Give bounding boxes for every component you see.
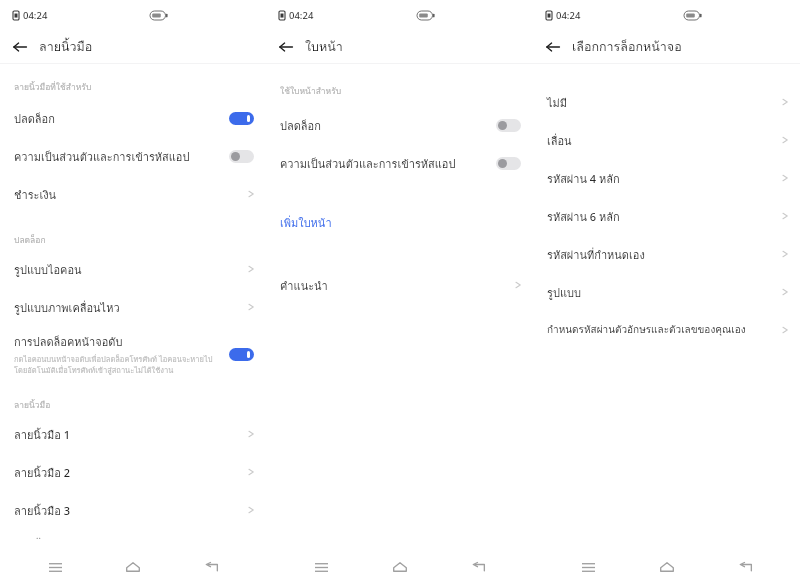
button[interactable]: รูปแบบไอคอน xyxy=(0,250,266,288)
button[interactable]: Off xyxy=(496,119,521,132)
button[interactable]: Off xyxy=(229,150,254,163)
staticText: ลายนิ้วมือ xyxy=(14,398,51,412)
button[interactable]: Back xyxy=(273,34,299,60)
staticText: ลายนิ้วมือ 1 xyxy=(14,426,245,443)
staticText: รหัสผ่าน 6 หลัก xyxy=(547,208,779,225)
button[interactable]: Recent apps xyxy=(298,549,344,585)
button[interactable]: Home xyxy=(110,549,156,585)
staticText: เลื่อน xyxy=(547,132,779,149)
button[interactable]: On xyxy=(229,348,254,361)
button[interactable]: รูปแบบภาพเคลื่อนไหว xyxy=(0,288,266,326)
staticText: รูปแบบภาพเคลื่อนไหว xyxy=(14,299,245,316)
button[interactable]: ลายนิ้วมือ 3 xyxy=(0,491,266,529)
button[interactable]: Home xyxy=(644,549,690,585)
button[interactable]: คำแนะนำ xyxy=(266,266,533,304)
staticText: เลือกการล็อกหน้าจอ xyxy=(572,37,682,57)
button[interactable]: Back xyxy=(455,549,501,585)
button[interactable]: รหัสผ่าน 4 หลัก xyxy=(533,159,800,197)
staticText: ลายนิ้วมือ 3 xyxy=(14,502,245,519)
staticText: ปลดล็อก xyxy=(14,110,223,127)
button[interactable]: ปลดล็อก xyxy=(0,99,266,137)
button[interactable]: Back xyxy=(7,34,33,60)
staticText: ความเป็นส่วนตัวและการเข้ารหัสแอป xyxy=(14,148,223,165)
button[interactable]: เพิ่มใบหน้า xyxy=(266,208,533,236)
button[interactable]: Recent apps xyxy=(565,549,611,585)
staticText: ชำระเงิน xyxy=(14,186,245,203)
button[interactable]: ความเป็นส่วนตัวและการเข้ารหัสแอป xyxy=(266,144,533,182)
button[interactable]: Recent apps xyxy=(32,549,78,585)
button[interactable]: ไม่มี xyxy=(533,83,800,121)
button[interactable]: รหัสผ่านที่กำหนดเอง xyxy=(533,235,800,273)
staticText: ความเป็นส่วนตัวและการเข้ารหัสแอป xyxy=(280,155,490,172)
staticText: คำแนะนำ xyxy=(280,277,512,294)
button[interactable]: Back xyxy=(540,34,566,60)
button[interactable]: On xyxy=(229,112,254,125)
staticText: ลายนิ้วมือที่ใช้สำหรับ xyxy=(14,80,92,94)
staticText: กดไอคอนบนหน้าจอดับเพื่อปลดล็อคโทรศัพท์ ไ… xyxy=(14,353,221,376)
staticText: .. xyxy=(36,529,41,541)
staticText: กำหนดรหัสผ่านตัวอักษรและตัวเลขของคุณเอง xyxy=(547,322,781,338)
button[interactable]: ชำระเงิน xyxy=(0,175,266,213)
button[interactable]: รูปแบบ xyxy=(533,273,800,311)
staticText: ไม่มี xyxy=(547,94,779,111)
staticText: รูปแบบไอคอน xyxy=(14,261,245,278)
button[interactable]: เลื่อน xyxy=(533,121,800,159)
button[interactable]: Back xyxy=(188,549,234,585)
button[interactable]: ปลดล็อก xyxy=(266,106,533,144)
button[interactable]: รหัสผ่าน 6 หลัก xyxy=(533,197,800,235)
staticText: เพิ่มใบหน้า xyxy=(280,214,332,231)
staticText: ใบหน้า xyxy=(305,37,343,57)
staticText: รหัสผ่านที่กำหนดเอง xyxy=(547,246,779,263)
button[interactable]: Off xyxy=(496,157,521,170)
button[interactable]: กำหนดรหัสผ่านตัวอักษรและตัวเลขของคุณเอง xyxy=(533,311,800,349)
button[interactable]: Back xyxy=(722,549,768,585)
staticText: ใช้ใบหน้าสำหรับ xyxy=(280,84,342,98)
staticText: 04:24 xyxy=(556,9,581,22)
staticText: 04:24 xyxy=(289,9,314,22)
staticText: รหัสผ่าน 4 หลัก xyxy=(547,170,779,187)
staticText: การปลดล็อคหน้าจอดับ xyxy=(14,333,123,350)
staticText: 04:24 xyxy=(23,9,48,22)
button[interactable]: Home xyxy=(377,549,423,585)
staticText: รูปแบบ xyxy=(547,284,779,301)
button[interactable]: ความเป็นส่วนตัวและการเข้ารหัสแอป xyxy=(0,137,266,175)
button[interactable]: ลายนิ้วมือ 2 xyxy=(0,453,266,491)
button[interactable]: การปลดล็อคหน้าจอดับ xyxy=(0,326,266,376)
staticText: ปลดล็อก xyxy=(14,233,46,247)
staticText: ลายนิ้วมือ xyxy=(39,37,93,57)
button[interactable]: ลายนิ้วมือ 1 xyxy=(0,415,266,453)
staticText: ปลดล็อก xyxy=(280,117,490,134)
staticText: ลายนิ้วมือ 2 xyxy=(14,464,245,481)
